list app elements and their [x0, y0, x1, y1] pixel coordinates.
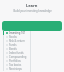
button[interactable] — [2, 21, 62, 31]
button[interactable]: Bonds — [0, 47, 64, 51]
staticText: Funds — [9, 43, 17, 47]
staticText: Risk & return — [9, 39, 25, 43]
button[interactable]: Tax basics — [0, 63, 64, 67]
staticText: Compounding — [9, 55, 27, 59]
button[interactable]: Investing 101 — [0, 31, 64, 35]
staticText: Stocks — [9, 35, 17, 39]
button[interactable]: Compounding — [0, 55, 64, 59]
button[interactable]: Index funds — [0, 51, 64, 55]
staticText: Next steps — [9, 67, 22, 71]
button[interactable]: Stocks — [0, 35, 64, 39]
staticText: Learn — [26, 3, 38, 8]
staticText: Bonds — [9, 47, 17, 51]
staticText: Index funds — [9, 51, 24, 55]
staticText: Investing 101 — [9, 31, 26, 35]
button[interactable]: Risk & return — [0, 39, 64, 43]
button[interactable]: Next steps — [0, 67, 64, 71]
staticText: Tax basics — [9, 63, 22, 67]
staticText: Build your investing knowledge — [13, 9, 52, 13]
staticText: Portfolios — [9, 59, 21, 63]
button[interactable]: Portfolios — [0, 59, 64, 63]
button[interactable]: Funds — [0, 43, 64, 47]
